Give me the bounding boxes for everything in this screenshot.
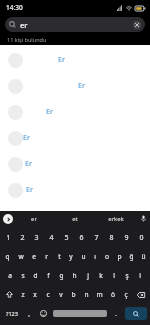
- button[interactable]: Space: [53, 310, 107, 317]
- button[interactable]: m: [93, 285, 106, 304]
- staticText: 8: [109, 233, 114, 243]
- staticText: k: [99, 271, 103, 280]
- staticText: d: [33, 271, 38, 280]
- button[interactable]: s: [16, 266, 29, 285]
- staticText: i: [139, 271, 141, 280]
- staticText: 14:30: [6, 3, 23, 12]
- button[interactable]: b: [67, 285, 80, 304]
- button[interactable]: 1: [1, 228, 15, 247]
- button[interactable]: ö: [106, 285, 119, 304]
- button[interactable]: u: [77, 247, 89, 266]
- staticText: g: [59, 271, 64, 280]
- staticText: h: [72, 271, 77, 280]
- staticText: 7: [94, 233, 99, 243]
- button[interactable]: p: [113, 247, 125, 266]
- staticText: c: [46, 290, 50, 299]
- button[interactable]: Search: [125, 307, 147, 320]
- button[interactable]: 3: [29, 228, 44, 247]
- staticText: 0: [139, 233, 144, 243]
- button[interactable]: o: [101, 247, 113, 266]
- staticText: 3: [34, 233, 39, 243]
- button[interactable]: 8: [104, 228, 119, 247]
- button[interactable]: y: [65, 247, 77, 266]
- button[interactable]: z: [17, 285, 29, 304]
- button[interactable]: ç: [119, 285, 132, 304]
- button[interactable]: q: [1, 247, 14, 266]
- button[interactable]: ?123: [1, 304, 22, 323]
- button[interactable]: Er: [0, 47, 150, 73]
- button[interactable]: e: [27, 247, 40, 266]
- staticText: 6: [79, 233, 84, 243]
- button[interactable]: Er: [0, 151, 150, 177]
- button[interactable]: Er: [0, 177, 150, 203]
- button[interactable]: t: [53, 247, 65, 266]
- staticText: Er: [58, 55, 65, 65]
- button[interactable]: er: [13, 211, 54, 226]
- button[interactable]: ş: [120, 266, 133, 285]
- staticText: r: [45, 252, 48, 261]
- button[interactable]: w: [14, 247, 27, 266]
- staticText: Er: [25, 159, 32, 169]
- staticText: ç: [124, 290, 128, 299]
- button[interactable]: Er: [0, 125, 150, 151]
- button[interactable]: erkek: [95, 211, 136, 226]
- staticText: Er: [26, 185, 33, 195]
- staticText: f: [47, 271, 50, 280]
- staticText: ş: [125, 271, 129, 280]
- staticText: n: [84, 290, 89, 299]
- button[interactable]: Er: [0, 99, 150, 125]
- button[interactable]: r: [40, 247, 53, 266]
- button[interactable]: n: [80, 285, 93, 304]
- staticText: q: [5, 252, 10, 261]
- staticText: a: [8, 271, 12, 280]
- button[interactable]: c: [41, 285, 54, 304]
- button[interactable]: a: [4, 266, 16, 285]
- button[interactable]: More suggestions: [3, 214, 13, 224]
- button[interactable]: et: [54, 211, 95, 226]
- button[interactable]: 9: [119, 228, 134, 247]
- button[interactable]: ğ: [125, 247, 137, 266]
- button[interactable]: x: [29, 285, 41, 304]
- button[interactable]: ü: [137, 247, 149, 266]
- staticText: ,: [28, 309, 30, 318]
- button[interactable]: ,: [22, 304, 36, 323]
- button[interactable]: 0: [134, 228, 149, 247]
- button[interactable]: 4: [44, 228, 59, 247]
- button[interactable]: l: [107, 266, 120, 285]
- staticText: s: [21, 271, 25, 280]
- button[interactable]: ı: [89, 247, 101, 266]
- button[interactable]: Er: [0, 73, 150, 99]
- button[interactable]: .: [109, 304, 123, 323]
- staticText: j: [87, 271, 89, 280]
- staticText: 1: [6, 233, 11, 243]
- button[interactable]: g: [55, 266, 68, 285]
- staticText: erkek: [108, 215, 124, 223]
- button[interactable]: Shift: [1, 285, 17, 304]
- staticText: b: [71, 290, 76, 299]
- button[interactable]: Backspace: [132, 285, 149, 304]
- staticText: ü: [141, 252, 146, 261]
- button[interactable]: Clear search: [133, 21, 141, 29]
- staticText: er: [31, 215, 37, 223]
- button[interactable]: er: [5, 17, 145, 32]
- staticText: p: [117, 252, 122, 261]
- staticText: Er: [23, 133, 30, 143]
- button[interactable]: 6: [74, 228, 89, 247]
- button[interactable]: v: [54, 285, 67, 304]
- button[interactable]: j: [81, 266, 94, 285]
- button[interactable]: i: [133, 266, 146, 285]
- button[interactable]: 7: [89, 228, 104, 247]
- staticText: 11 kişi bulundu: [7, 36, 47, 43]
- button[interactable]: 5: [59, 228, 74, 247]
- button[interactable]: Emoji: [36, 304, 51, 323]
- button[interactable]: 2: [15, 228, 29, 247]
- button[interactable]: Voice input: [136, 211, 150, 226]
- staticText: 5: [64, 233, 69, 243]
- button[interactable]: k: [94, 266, 107, 285]
- button[interactable]: h: [68, 266, 81, 285]
- staticText: z: [21, 290, 25, 299]
- staticText: ö: [111, 290, 115, 299]
- button[interactable]: f: [42, 266, 55, 285]
- button[interactable]: d: [29, 266, 42, 285]
- staticText: w: [18, 252, 24, 261]
